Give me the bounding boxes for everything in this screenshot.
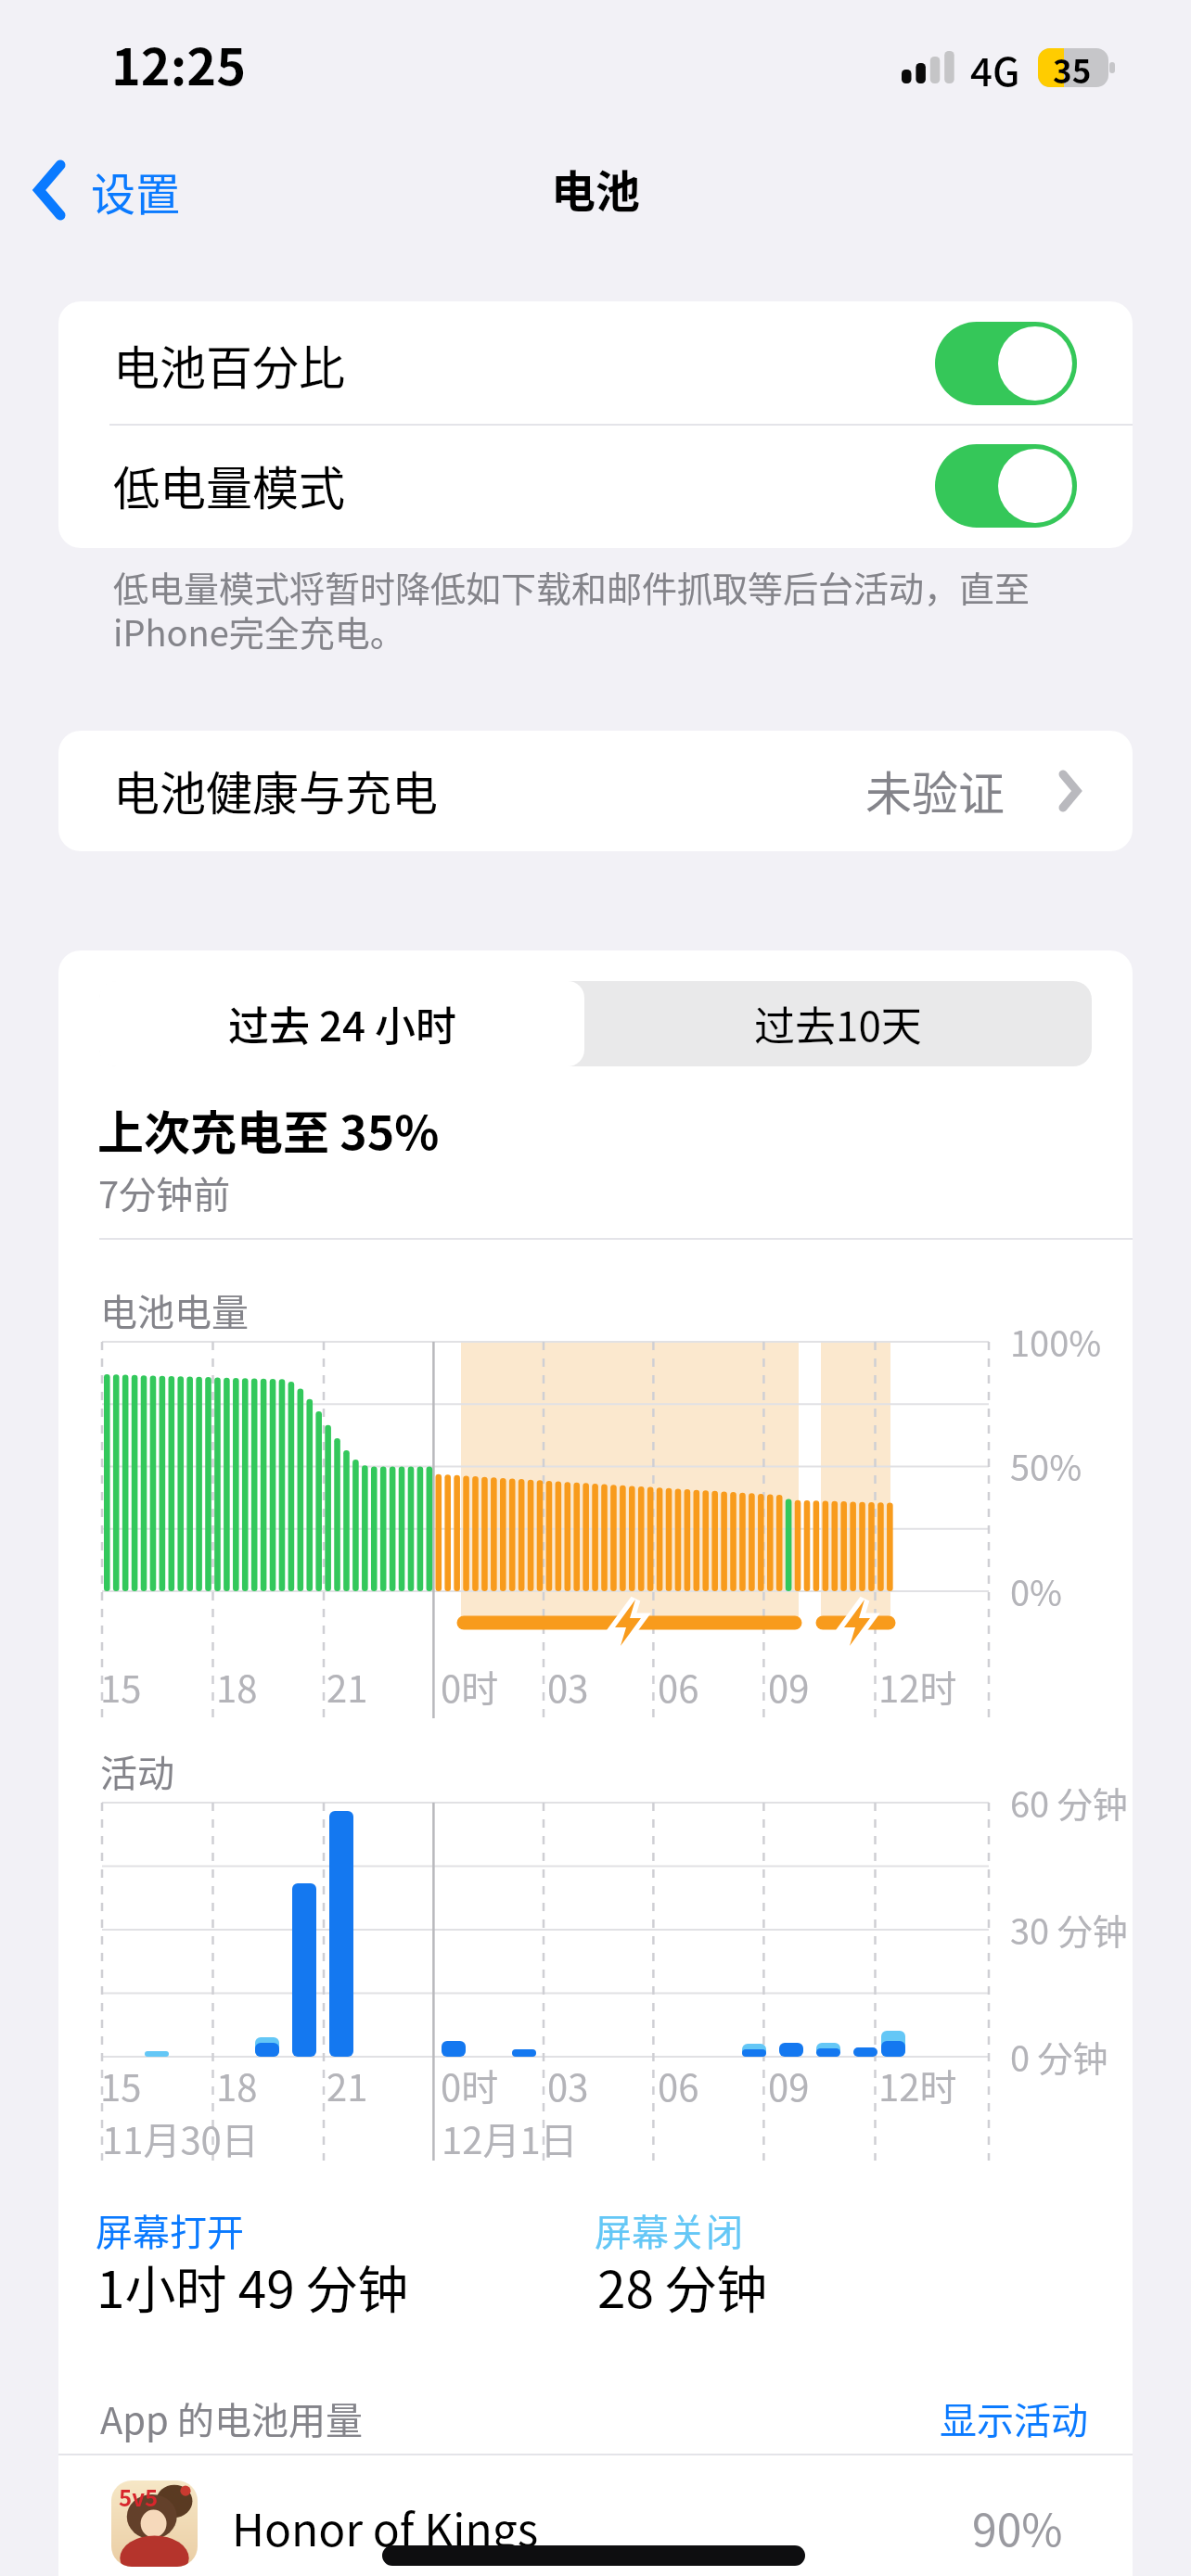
staticText: 21 (327, 2059, 368, 2112)
button[interactable] (935, 444, 1077, 528)
button[interactable]: 电池百分比 (58, 301, 1133, 425)
staticText: 90% (972, 2494, 1063, 2559)
button[interactable]: 过去 24 小时 (99, 981, 584, 1066)
staticText: 15 (100, 1660, 142, 1714)
staticText: 18 (216, 2059, 258, 2112)
staticText: 06 (658, 1660, 699, 1714)
staticText: 过去10天 (754, 994, 922, 1053)
staticText: 50% (1010, 1440, 1082, 1491)
staticText: 活动 (100, 1744, 174, 1798)
staticText: 03 (547, 2059, 589, 2112)
staticText: 0时 (441, 1660, 499, 1714)
button[interactable]: 屏幕关闭 (593, 2200, 890, 2321)
button[interactable]: 设置 (28, 153, 250, 227)
staticText: 0 分钟 (1010, 2031, 1108, 2082)
staticText: Honor of Kings (232, 2494, 539, 2559)
staticText: App 的电池用量 (100, 2391, 363, 2445)
staticText: 电池百分比 (113, 331, 345, 398)
staticText: 5v5 (119, 2480, 159, 2513)
staticText: 过去 24 小时 (228, 994, 456, 1053)
staticText: 电池 (551, 156, 641, 221)
staticText: 1小时 49 分钟 (96, 2249, 409, 2323)
staticText: 屏幕关闭 (595, 2203, 743, 2257)
staticText: 12:25 (111, 27, 246, 99)
staticText: 12时 (878, 1660, 957, 1714)
staticText: 100% (1010, 1316, 1102, 1367)
staticText: 30 分钟 (1010, 1904, 1128, 1955)
staticText: 18 (216, 1660, 258, 1714)
staticText: 15 (100, 2059, 142, 2112)
staticText: 低电量模式 (113, 452, 345, 518)
staticText: 屏幕打开 (96, 2203, 244, 2257)
staticText: 显示活动 (940, 2391, 1088, 2445)
button[interactable]: 显示活动 (934, 2386, 1101, 2442)
staticText: 21 (327, 1660, 368, 1714)
staticText: 0时 (441, 2059, 499, 2112)
button[interactable]: 低电量模式 (58, 425, 1133, 548)
button[interactable] (935, 322, 1077, 405)
staticText: 上次充电至 35% (97, 1096, 440, 1163)
staticText: 低电量模式将暂时降低如下载和邮件抓取等后台活动，直至 iPhone完全充电。 (113, 561, 1031, 657)
staticText: 0% (1010, 1565, 1063, 1616)
staticText: 06 (658, 2059, 699, 2112)
staticText: 电池健康与充电 (113, 757, 438, 823)
staticText: 未验证 (865, 757, 1005, 823)
staticText: 4G (970, 41, 1020, 97)
staticText: 12时 (878, 2059, 957, 2112)
button[interactable]: 过去10天 (584, 981, 1092, 1066)
staticText: 设置 (91, 159, 181, 223)
staticText: 03 (547, 1660, 589, 1714)
staticText: 28 分钟 (597, 2249, 768, 2323)
button[interactable]: 屏幕打开 (94, 2200, 483, 2321)
staticText: 09 (768, 1660, 810, 1714)
button[interactable]: 电池健康与充电 (58, 731, 1133, 851)
staticText: 电池电量 (100, 1283, 249, 1337)
button[interactable]: 5v5 (58, 2455, 1133, 2576)
staticText: 35 (1053, 45, 1092, 93)
staticText: 11月30日 (102, 2111, 259, 2165)
staticText: 09 (768, 2059, 810, 2112)
staticText: 7分钟前 (98, 1166, 231, 1219)
staticText: 60 分钟 (1010, 1777, 1128, 1828)
staticText: 12月1日 (442, 2111, 578, 2165)
